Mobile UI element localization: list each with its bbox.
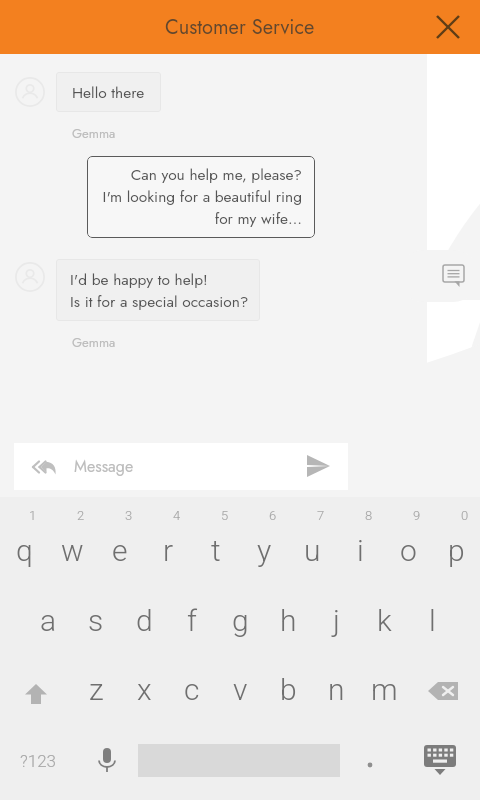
button[interactable]: I'd be happy to help! [56, 259, 260, 321]
staticText: f [187, 603, 197, 638]
staticText: 2 [77, 508, 85, 523]
staticText: c [184, 672, 200, 707]
staticText: Gemma [72, 124, 116, 143]
staticText: 3 [125, 508, 133, 523]
staticText: Hello there [72, 81, 145, 103]
staticText: q [16, 533, 33, 568]
button[interactable]: Reply all [14, 443, 348, 490]
staticText: Gemma [72, 333, 116, 352]
staticText: 6 [269, 508, 277, 523]
button[interactable]: Backspace [408, 660, 480, 729]
button[interactable]: Hello there [56, 72, 161, 112]
staticText: 0 [461, 508, 469, 523]
staticText: p [448, 533, 465, 568]
button[interactable]: 3 [96, 521, 144, 590]
staticText: u [304, 533, 321, 568]
staticText: for my wife… [95, 207, 302, 229]
button[interactable]: Chat [439, 261, 469, 291]
staticText: Message [74, 455, 134, 478]
button[interactable]: 0 [432, 521, 480, 590]
button[interactable]: 1 [0, 521, 48, 590]
button[interactable]: Hide keyboard [400, 726, 480, 795]
staticText: s [88, 603, 104, 638]
staticText: l [429, 603, 436, 638]
button[interactable]: ?123 [0, 726, 76, 795]
button[interactable]: Voice input [76, 726, 138, 795]
staticText: I'd be happy to help! [70, 268, 208, 290]
staticText: Can you help me, please? [95, 163, 302, 185]
button[interactable]: z [72, 660, 120, 729]
staticText: b [280, 672, 297, 707]
button[interactable]: Shift [0, 660, 72, 729]
staticText: 4 [173, 508, 181, 523]
button[interactable]: v [216, 660, 264, 729]
staticText: o [400, 533, 417, 568]
button[interactable]: s [72, 591, 120, 660]
staticText: n [328, 672, 345, 707]
button[interactable]: 4 [144, 521, 192, 590]
staticText: 1 [29, 508, 37, 523]
staticText: 8 [365, 508, 373, 523]
staticText: y [257, 533, 272, 568]
button[interactable]: g [216, 591, 264, 660]
staticText: z [89, 672, 104, 707]
button[interactable]: x [120, 660, 168, 729]
button[interactable]: c [168, 660, 216, 729]
other: Send [307, 455, 330, 478]
staticText: 7 [317, 508, 325, 523]
staticText: 5 [221, 508, 229, 523]
button[interactable]: k [360, 591, 408, 660]
button[interactable]: d [120, 591, 168, 660]
staticText: Is it for a special occasion? [70, 290, 249, 312]
staticText: Customer Service [165, 13, 315, 42]
button[interactable]: 2 [48, 521, 96, 590]
button[interactable]: 6 [240, 521, 288, 590]
button[interactable]: n [312, 660, 360, 729]
staticText: v [233, 672, 248, 707]
staticText: a [40, 603, 57, 638]
button[interactable] [340, 726, 400, 795]
button[interactable]: 7 [288, 521, 336, 590]
staticText: x [137, 672, 152, 707]
button[interactable]: 8 [336, 521, 384, 590]
button[interactable]: f [168, 591, 216, 660]
button[interactable]: h [264, 591, 312, 660]
staticText: j [333, 603, 340, 638]
staticText: k [377, 603, 392, 638]
staticText: r [163, 533, 174, 568]
staticText: ?123 [20, 751, 57, 771]
button[interactable]: l [408, 591, 456, 660]
button[interactable]: m [360, 660, 408, 729]
staticText: i [357, 533, 364, 568]
button[interactable]: a [24, 591, 72, 660]
staticText: I'm looking for a beautiful ring [95, 185, 302, 207]
staticText: w [61, 533, 84, 568]
button[interactable]: j [312, 591, 360, 660]
button[interactable]: Can you help me, please? [87, 156, 315, 238]
other: Reply all [31, 454, 57, 480]
staticText: d [136, 603, 153, 638]
staticText: e [112, 533, 128, 568]
button[interactable]: 5 [192, 521, 240, 590]
staticText: 9 [413, 508, 421, 523]
button[interactable]: b [264, 660, 312, 729]
button[interactable]: Close [426, 5, 470, 49]
staticText: m [371, 672, 398, 707]
staticText: t [211, 533, 221, 568]
staticText: g [232, 603, 249, 638]
staticText: h [280, 603, 297, 638]
button[interactable]: 9 [384, 521, 432, 590]
